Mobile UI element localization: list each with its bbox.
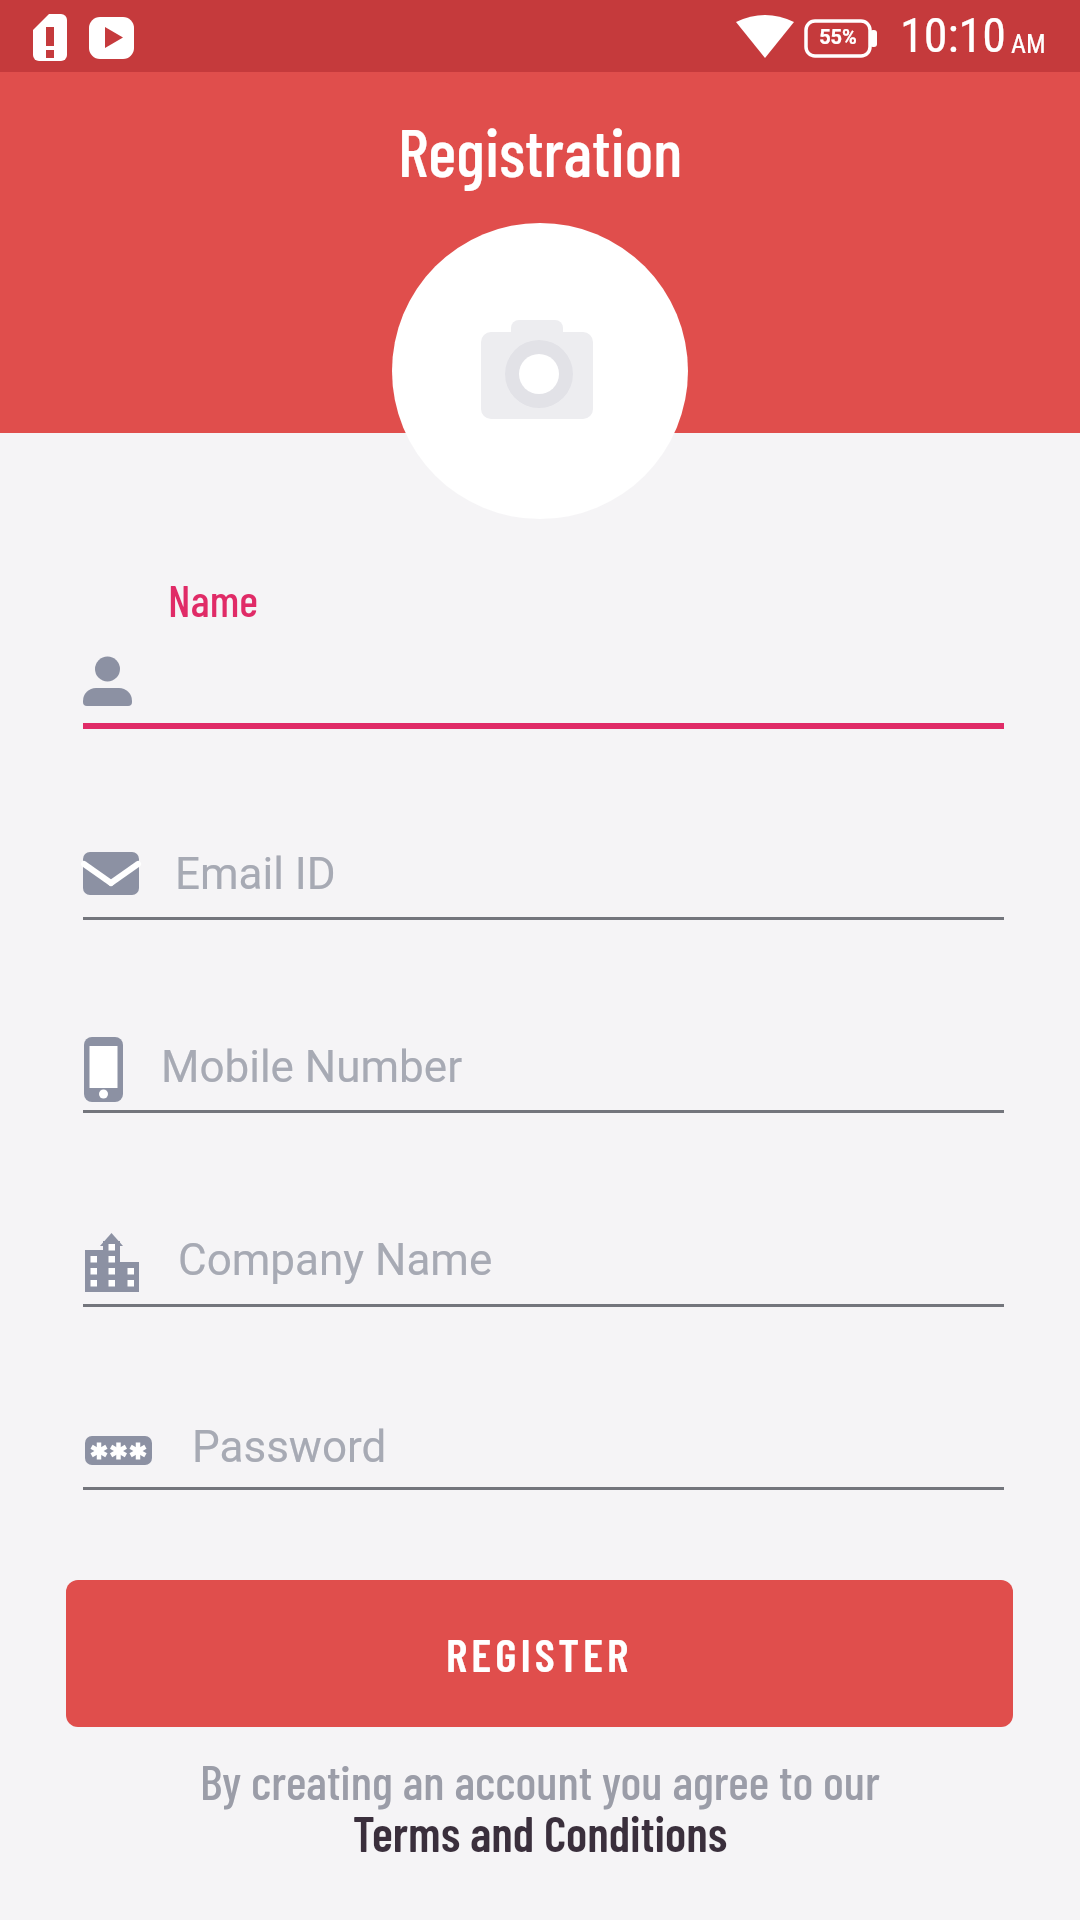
staticText: Password (192, 1421, 387, 1473)
staticText: AM (1011, 29, 1046, 59)
staticText: 10:10 (900, 7, 1006, 63)
staticText: 55% (806, 25, 870, 48)
staticText: REGISTER (446, 1626, 633, 1681)
button[interactable]: Terms and Conditions (0, 1803, 1080, 1862)
button[interactable] (392, 223, 688, 519)
staticText: Mobile Number (161, 1041, 463, 1093)
staticText: Name (168, 572, 259, 626)
staticText: Company Name (178, 1234, 493, 1286)
staticText: Registration (0, 110, 1080, 190)
staticText: Email ID (175, 848, 336, 900)
button[interactable]: REGISTER (66, 1580, 1013, 1727)
staticText: By creating an account you agree to our (0, 1751, 1080, 1810)
